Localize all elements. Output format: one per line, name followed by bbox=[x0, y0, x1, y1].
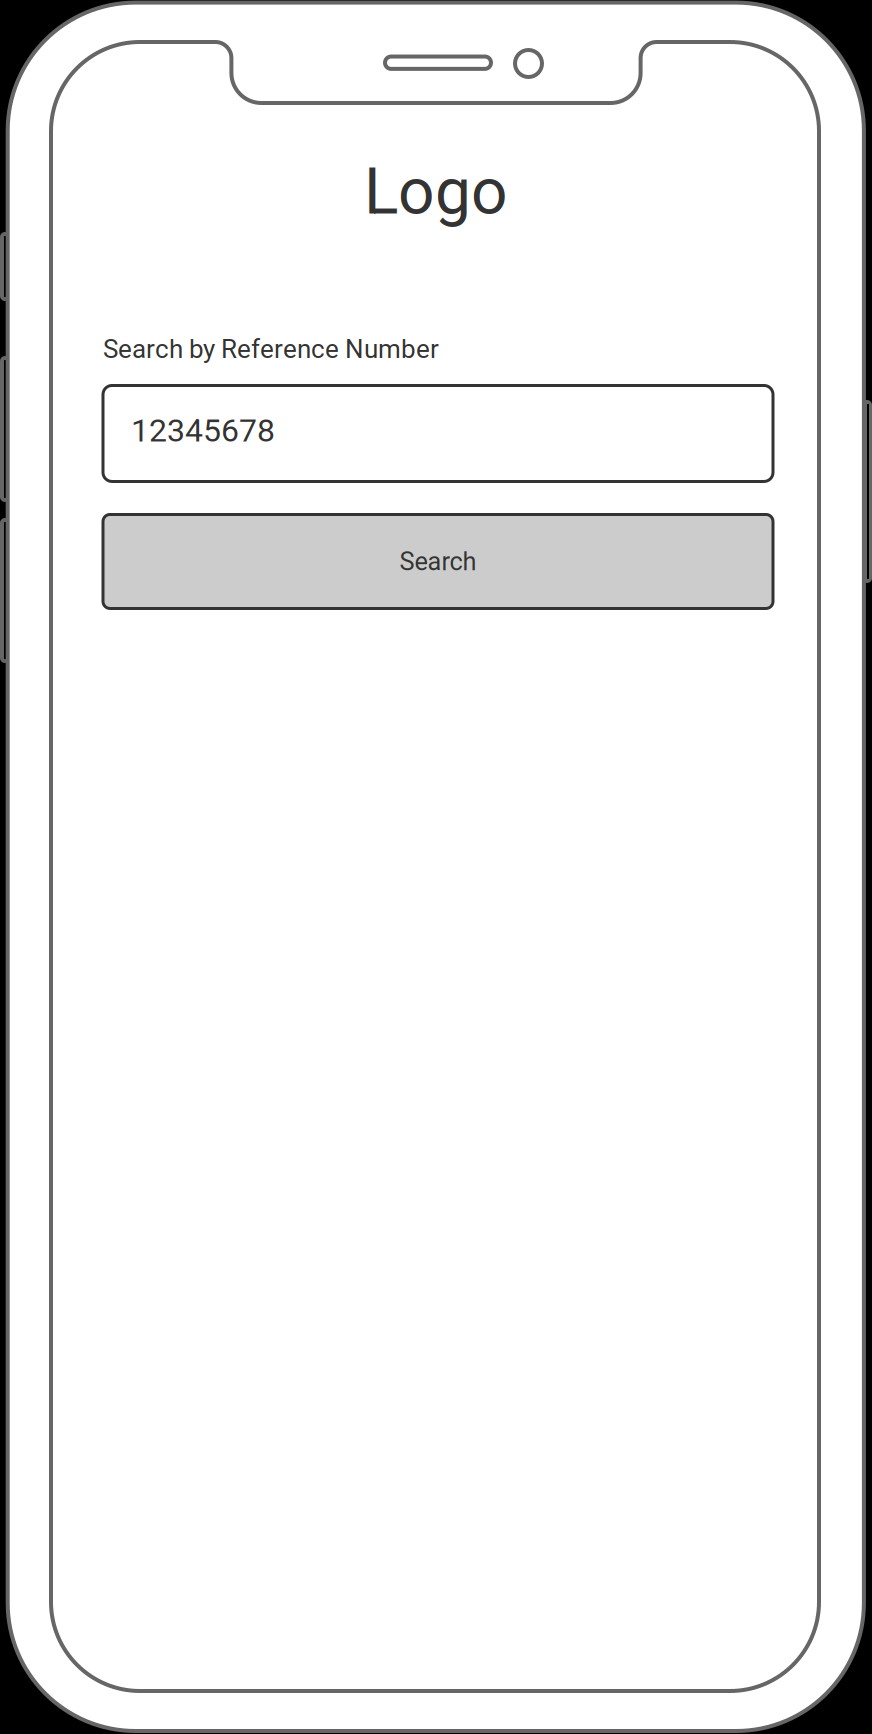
staticText: Search bbox=[399, 547, 476, 576]
button[interactable]: Search bbox=[103, 514, 773, 608]
button[interactable]: 12345678 bbox=[103, 385, 773, 481]
staticText: Logo bbox=[364, 154, 508, 229]
staticText: 12345678 bbox=[131, 412, 275, 449]
staticText: Search by Reference Number bbox=[103, 334, 439, 364]
